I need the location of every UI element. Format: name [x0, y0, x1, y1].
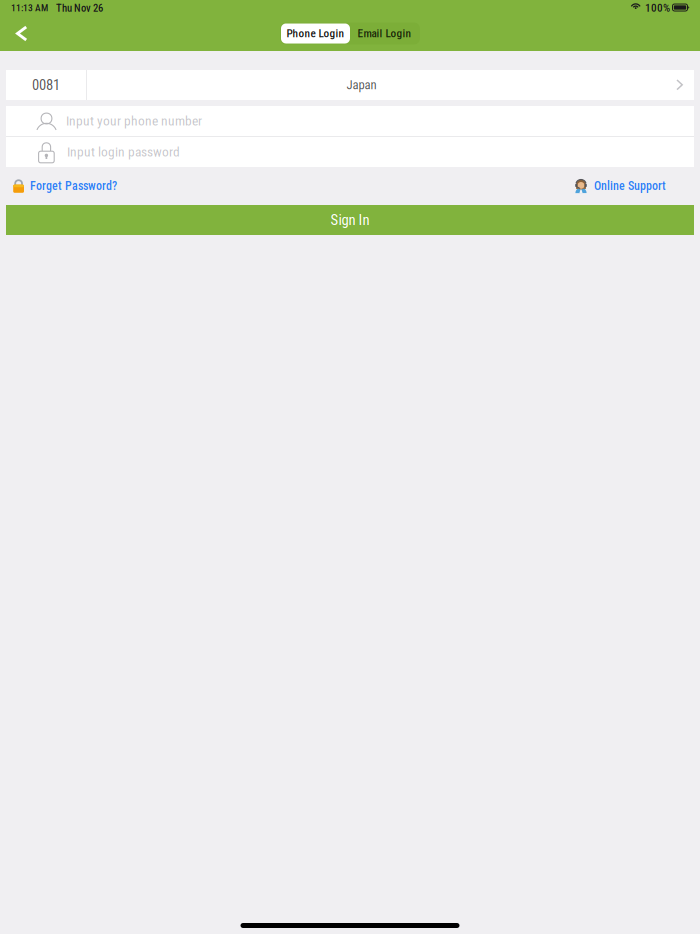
button[interactable]: Sign In [6, 205, 694, 235]
staticText: Input your phone number [66, 113, 202, 129]
button[interactable]: Email Login [350, 23, 419, 43]
staticText: Email Login [357, 27, 411, 40]
staticText: Input login password [67, 144, 180, 160]
button[interactable]: Back [0, 18, 42, 48]
staticText: Online Support [594, 179, 666, 193]
staticText: Thu Nov 26 [56, 2, 103, 14]
staticText: 100% [645, 1, 670, 15]
staticText: Forget Password? [30, 179, 117, 193]
button[interactable]: Forget Password? [0, 176, 130, 196]
staticText: Japan [346, 78, 376, 92]
button[interactable]: Online Support [562, 176, 700, 196]
staticText: 11:13 AM [11, 2, 48, 14]
button[interactable]: Phone Login [281, 23, 350, 43]
staticText: Sign In [330, 211, 369, 229]
staticText: 0081 [32, 76, 60, 94]
staticText: Phone Login [286, 27, 344, 40]
button[interactable]: 0081 [6, 70, 694, 100]
